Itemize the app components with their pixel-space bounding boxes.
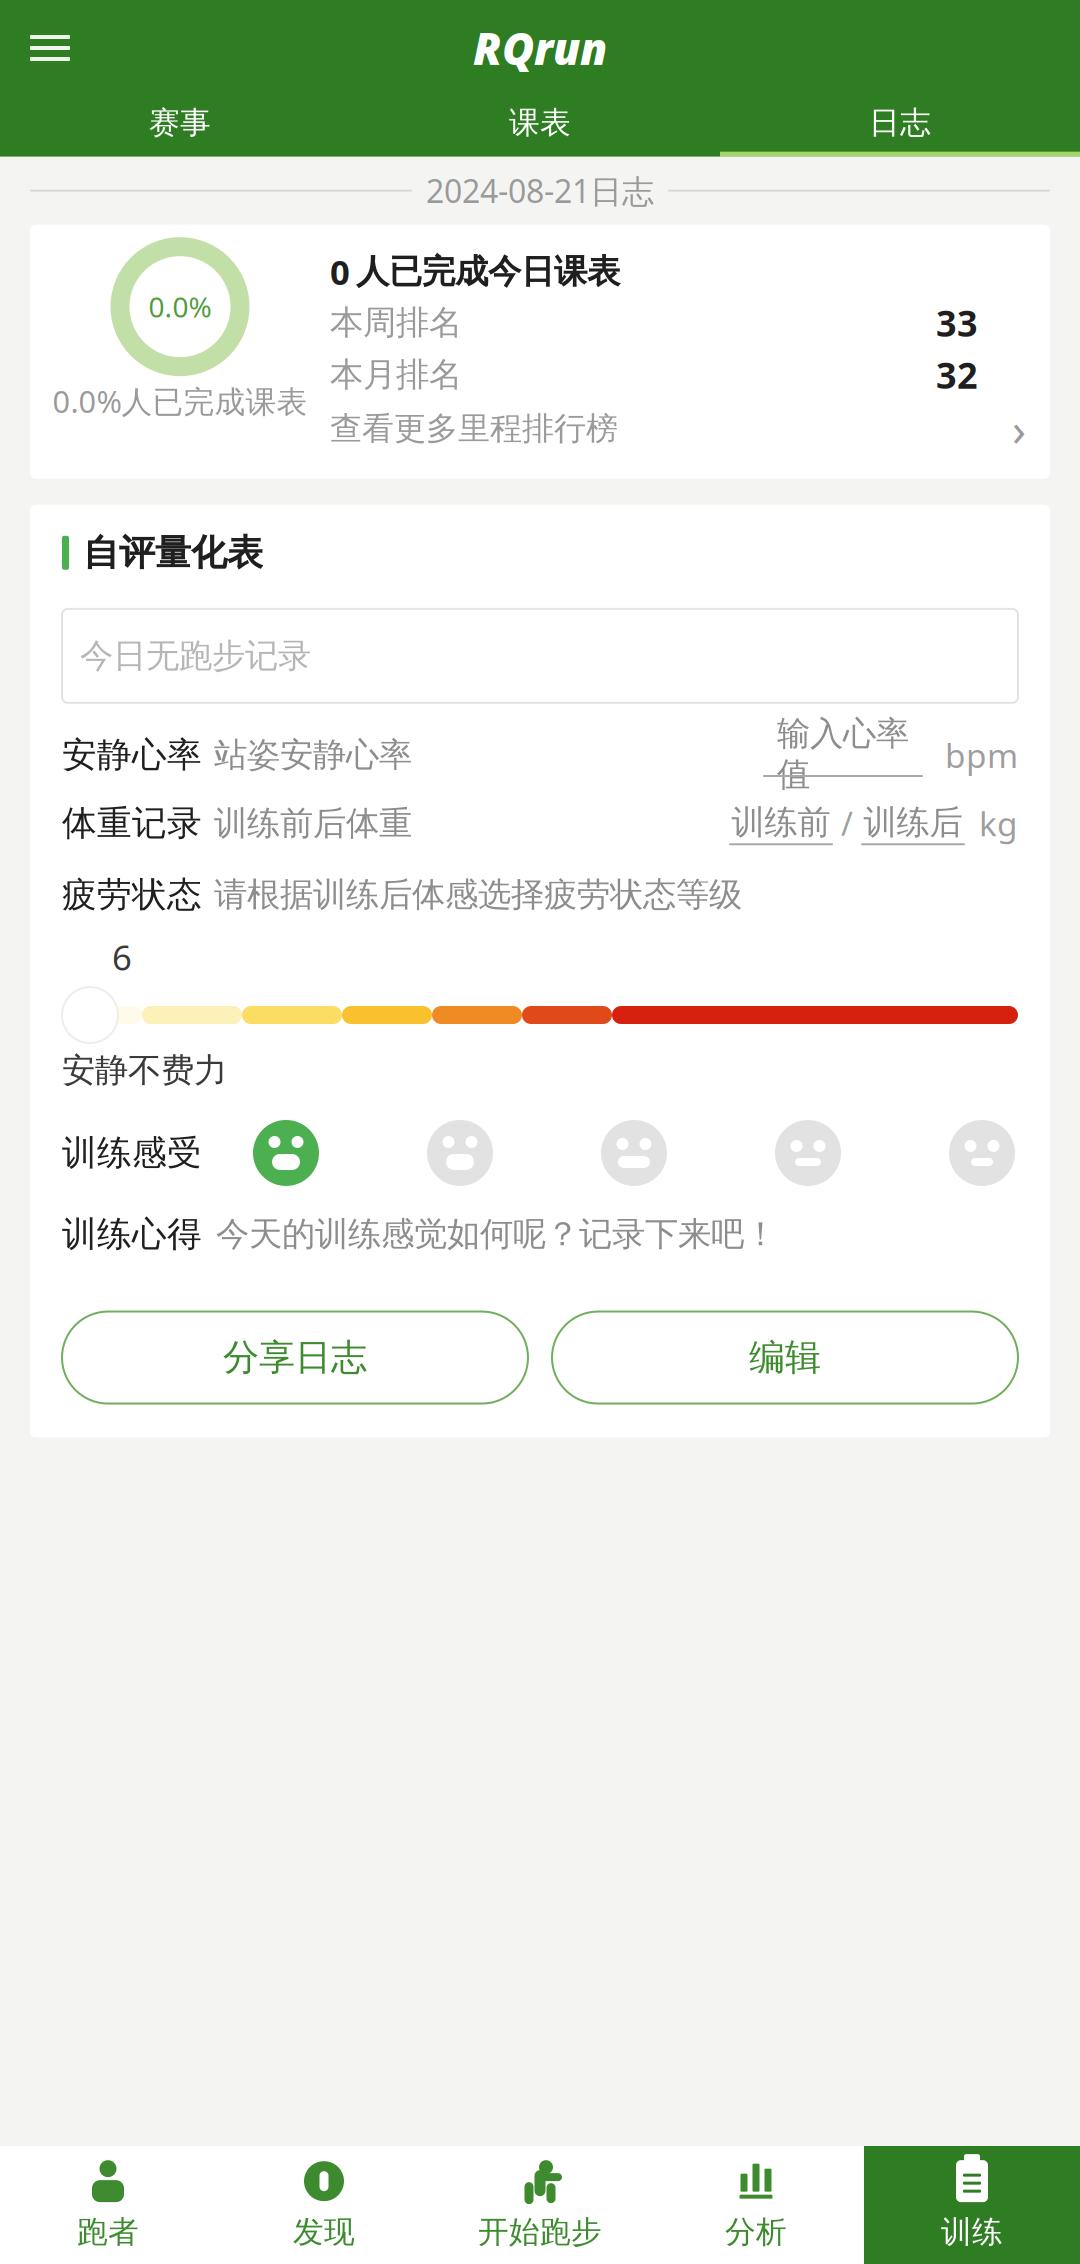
staticText: 2024-08-21日志 (426, 169, 654, 212)
button[interactable]: 输入心率值 (763, 733, 923, 777)
staticText: 开始跑步 (478, 2213, 602, 2251)
button[interactable]: Training feeling option (946, 1117, 1018, 1189)
button[interactable]: 赛事 (0, 96, 360, 157)
staticText: / (833, 802, 861, 844)
staticText: 赛事 (149, 104, 211, 142)
staticText: 查看更多里程排行榜 (330, 409, 618, 448)
button[interactable]: 开始跑步 (432, 2146, 648, 2264)
button[interactable]: 发现 (216, 2146, 432, 2264)
staticText: 训练心得 (62, 1213, 202, 1256)
staticText: 分析 (725, 2213, 787, 2251)
staticText: 训练前后体重 (214, 803, 412, 844)
staticText: 站姿安静心率 (214, 734, 412, 775)
staticText: 32 (936, 351, 978, 399)
button[interactable]: 训练 (864, 2146, 1080, 2264)
staticText: 分享日志 (223, 1335, 367, 1380)
staticText: 跑者 (77, 2213, 139, 2251)
staticText: 日志 (869, 104, 931, 142)
button[interactable]: 跑者 (0, 2146, 216, 2264)
staticText: 请根据训练后体感选择疲劳状态等级 (214, 874, 742, 915)
staticText: 体重记录 (62, 802, 202, 845)
staticText: 输入心率值 (777, 713, 909, 795)
staticText: 人已完成今日课表 (356, 251, 620, 292)
staticText: 课表 (509, 104, 571, 142)
button[interactable]: Training feeling option (772, 1117, 844, 1189)
staticText: 0.0%人已完成课表 (52, 381, 307, 421)
staticText: 本月排名 (330, 354, 462, 395)
staticText: › (1012, 399, 1026, 459)
staticText: 疲劳状态 (62, 873, 202, 916)
staticText: 训练后 (863, 802, 962, 843)
staticText: 安静心率 (62, 734, 202, 776)
staticText: 安静不费力 (62, 1050, 227, 1091)
button[interactable]: 分享日志 (62, 1312, 528, 1404)
staticText: 发现 (293, 2213, 355, 2251)
staticText: 训练感受 (62, 1132, 202, 1174)
button[interactable]: 训练后 (861, 801, 965, 845)
button[interactable]: Training feeling option (250, 1117, 322, 1189)
staticText: bpm (945, 733, 1018, 777)
staticText: 33 (936, 299, 978, 347)
button[interactable]: 训练前 (729, 801, 833, 845)
staticText: 编辑 (749, 1335, 821, 1380)
staticText: 训练前 (731, 802, 830, 843)
staticText: RQrun (473, 19, 607, 77)
button[interactable]: 查看更多里程排行榜 (330, 401, 1026, 457)
staticText: 今天的训练感觉如何呢？记录下来吧！ (216, 1214, 777, 1255)
staticText: 今日无跑步记录 (80, 635, 311, 676)
staticText: 0 (330, 249, 350, 295)
staticText: kg (979, 801, 1018, 845)
button[interactable]: Training feeling option (598, 1117, 670, 1189)
staticText: 0.0% (148, 288, 211, 325)
staticText: 本周排名 (330, 302, 462, 343)
button[interactable]: 编辑 (552, 1312, 1018, 1404)
staticText: 训练 (941, 2213, 1003, 2251)
button[interactable]: 分析 (648, 2146, 864, 2264)
button[interactable]: 日志 (720, 96, 1080, 157)
button[interactable]: 今日无跑步记录 (62, 609, 1018, 703)
staticText: 6 (112, 934, 132, 980)
staticText: 自评量化表 (83, 531, 263, 575)
button[interactable]: Menu (18, 16, 82, 80)
button[interactable]: Training feeling option (424, 1117, 496, 1189)
button[interactable]: 课表 (360, 96, 720, 157)
